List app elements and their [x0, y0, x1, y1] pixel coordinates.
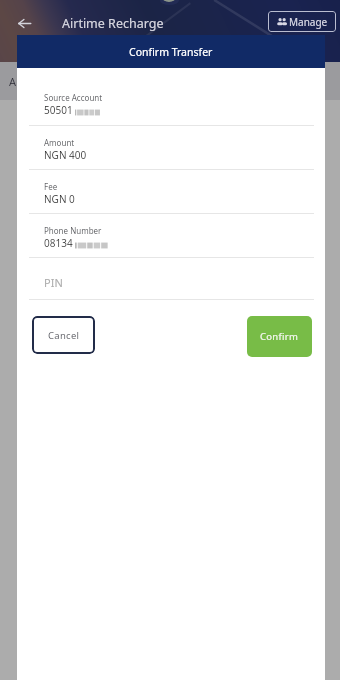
staticText: Amount: [44, 137, 75, 148]
staticText: PIN: [44, 275, 63, 290]
staticText: 08134: [44, 236, 73, 250]
staticText: Confirm: [260, 330, 299, 343]
button[interactable]: Confirm: [247, 316, 312, 357]
staticText: Airtime Recharge: [62, 15, 164, 32]
staticText: Source Account: [44, 92, 103, 103]
staticText: 50501: [44, 103, 73, 117]
staticText: NGN 400: [44, 148, 87, 162]
staticText: Phone Number: [44, 225, 102, 236]
button[interactable]: Back: [11, 10, 37, 36]
button[interactable]: Manage: [268, 11, 336, 32]
staticText: Fee: [44, 181, 58, 192]
button[interactable]: Cancel: [32, 316, 95, 354]
staticText: A: [9, 74, 17, 89]
staticText: NGN 0: [44, 192, 75, 206]
staticText: Manage: [289, 15, 328, 29]
staticText: Cancel: [48, 329, 80, 342]
staticText: Confirm Transfer: [129, 45, 213, 59]
